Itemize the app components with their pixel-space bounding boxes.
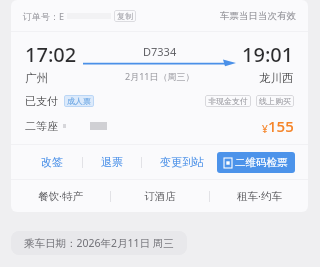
staticText: 线上购买	[259, 96, 291, 106]
staticText: ¥	[262, 122, 268, 136]
button[interactable]: 变更到站	[156, 151, 208, 173]
button[interactable]: 二维码检票	[217, 152, 295, 173]
staticText: 19:01	[242, 41, 294, 68]
button[interactable]: 餐饮·特产	[11, 180, 110, 212]
staticText: 复制	[117, 11, 133, 21]
staticText: 17:02	[25, 41, 77, 68]
staticText: 2月11日（周三）	[125, 70, 195, 82]
staticText: 退票	[101, 155, 123, 169]
staticText: 变更到站	[160, 155, 204, 169]
button[interactable]: 退票	[97, 151, 127, 173]
staticText: 车票当日当次有效	[220, 10, 296, 22]
staticText: 成人票	[67, 96, 91, 106]
staticText: 改签	[41, 155, 63, 169]
staticText: 二维码检票	[235, 156, 288, 169]
button[interactable]: 订酒店	[111, 180, 209, 212]
staticText: 广州	[25, 71, 48, 85]
staticText: 订酒店	[144, 190, 176, 203]
staticText: 已支付	[25, 94, 58, 108]
staticText: D7334	[143, 44, 177, 59]
button[interactable]: 租车·约车	[210, 180, 308, 212]
staticText: 非现金支付	[208, 96, 248, 106]
staticText: 餐饮·特产	[38, 189, 83, 203]
staticText: 乘车日期：2026年2月11日 周三	[24, 236, 174, 250]
staticText: 租车·约车	[237, 189, 282, 203]
staticText: 龙川西	[259, 71, 294, 85]
staticText: 155	[268, 116, 294, 136]
staticText: 二等座	[25, 119, 58, 133]
staticText: 订单号：E	[23, 10, 65, 22]
button[interactable]: 改签	[37, 151, 67, 173]
button[interactable]: 复制	[114, 10, 136, 22]
